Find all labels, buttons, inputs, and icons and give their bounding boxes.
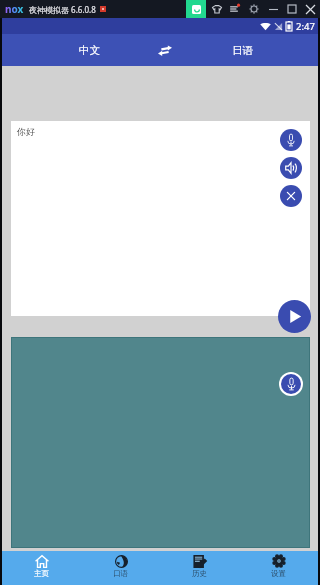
button[interactable]: 口语 <box>81 551 160 585</box>
staticText: 你好 <box>17 126 35 137</box>
button[interactable]: Voice input <box>280 129 302 151</box>
button[interactable]: Settings <box>246 0 262 18</box>
button[interactable]: Swap languages <box>148 34 181 66</box>
button[interactable]: Speak <box>280 157 302 179</box>
staticText: 历史 <box>192 569 207 578</box>
button[interactable]: 日语 <box>182 34 302 66</box>
button[interactable]: Voice input <box>281 374 301 394</box>
staticText: 2:47 <box>296 20 315 33</box>
button[interactable]: 中文 <box>29 34 149 66</box>
button[interactable]: Clear text <box>280 185 302 207</box>
button[interactable]: App store <box>186 0 206 18</box>
staticText: 设置 <box>271 569 286 578</box>
button[interactable]: 设置 <box>239 551 318 585</box>
button[interactable]: Close <box>302 0 318 18</box>
button[interactable]: 主页 <box>2 551 81 585</box>
staticText: nox <box>5 2 24 16</box>
staticText: 口语 <box>113 569 128 578</box>
button[interactable]: Translate <box>278 300 311 333</box>
button[interactable]: 历史 <box>160 551 239 585</box>
staticText: 中文 <box>79 44 100 57</box>
staticText: 日语 <box>232 44 253 57</box>
staticText: 夜神模拟器 6.6.0.8 <box>29 4 96 15</box>
button[interactable]: Themes <box>209 0 225 18</box>
button[interactable]: Maximize <box>284 0 300 18</box>
staticText: 主页 <box>34 569 49 578</box>
button[interactable]: Menu <box>226 0 242 18</box>
button[interactable]: Minimize <box>265 0 281 18</box>
